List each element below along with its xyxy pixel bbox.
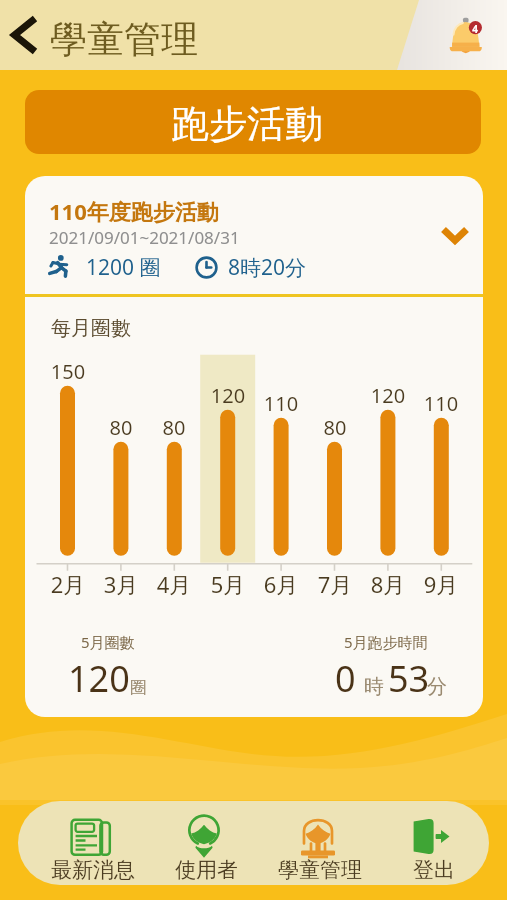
button[interactable]: 學童管理 (261, 801, 375, 885)
staticText: 110年度跑步活動 (49, 196, 219, 226)
staticText: 登出 (413, 857, 455, 883)
staticText: 110 (413, 390, 469, 417)
staticText: 每月圈數 (51, 316, 131, 341)
button[interactable]: Back (2, 8, 46, 62)
staticText: 8月 (360, 569, 416, 599)
staticText: 學童管理 (278, 857, 362, 883)
button[interactable]: Expand (432, 212, 478, 258)
staticText: 120 (68, 654, 130, 703)
staticText: 8時20分 (228, 253, 307, 282)
staticText: 學童管理 (50, 16, 198, 63)
staticText: 120 (360, 382, 416, 409)
staticText: 使用者 (175, 857, 238, 883)
staticText: 80 (146, 414, 202, 441)
staticText: 跑步活動 (171, 100, 323, 148)
staticText: 5月跑步時間 (344, 632, 428, 652)
staticText: 圈 (130, 677, 147, 698)
staticText: 9月 (413, 569, 469, 599)
staticText: 3月 (93, 569, 149, 599)
button[interactable]: 最新消息 (34, 801, 147, 885)
staticText: 0 (335, 654, 356, 703)
staticText: 110 (253, 390, 309, 417)
button[interactable]: 登出 (375, 801, 489, 885)
staticText: 1200 圈 (86, 253, 161, 282)
staticText: 2月 (40, 569, 96, 599)
staticText: 150 (40, 358, 96, 385)
staticText: 最新消息 (51, 857, 135, 883)
staticText: 53 (388, 654, 430, 703)
staticText: 4 (471, 22, 479, 36)
staticText: 5月 (200, 569, 256, 599)
staticText: 80 (307, 414, 363, 441)
staticText: 分 (427, 674, 447, 699)
button[interactable]: Notifications (442, 10, 490, 62)
staticText: 4月 (146, 569, 202, 599)
staticText: 6月 (253, 569, 309, 599)
staticText: 120 (200, 382, 256, 409)
staticText: 2021/09/01~2021/08/31 (49, 226, 240, 249)
staticText: 時 (364, 674, 384, 699)
staticText: 7月 (307, 569, 363, 599)
staticText: 80 (93, 414, 149, 441)
button[interactable]: 使用者 (147, 801, 261, 885)
staticText: 5月圈數 (81, 632, 135, 652)
button[interactable]: 跑步活動 (25, 90, 481, 154)
